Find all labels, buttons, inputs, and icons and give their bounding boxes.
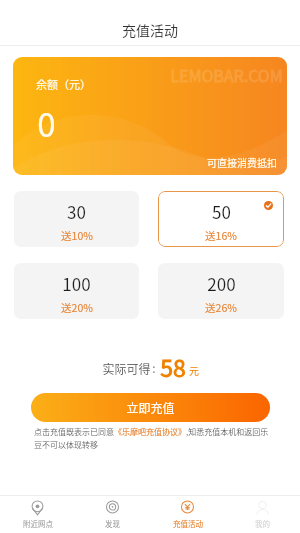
staticText: 100	[62, 271, 91, 296]
staticText: 实际可得	[102, 360, 151, 377]
staticText: 送26%	[205, 300, 237, 315]
staticText: 送10%	[61, 228, 93, 243]
staticText: 50	[212, 199, 231, 224]
button[interactable]: 30	[14, 191, 139, 247]
other: 附近网点	[30, 500, 45, 515]
button[interactable]: 我的	[225, 496, 300, 533]
button[interactable]: 附近网点	[0, 496, 75, 533]
button[interactable]: 发现	[75, 496, 150, 533]
staticText: 余额（元）	[36, 76, 91, 92]
staticText: 附近网点	[23, 518, 53, 529]
button[interactable]: 立即充值	[31, 393, 270, 422]
staticText: 30	[67, 199, 86, 224]
other: 充值活动	[180, 500, 195, 515]
staticText: 立即充值	[126, 399, 175, 416]
button[interactable]: 100	[14, 263, 139, 319]
staticText: 送16%	[205, 228, 237, 243]
staticText: :	[152, 359, 156, 376]
staticText: 可直接消费抵扣	[207, 155, 277, 169]
staticText: LEMOBAR.COM	[170, 63, 283, 86]
button[interactable]: 200	[158, 263, 284, 319]
button[interactable]: 余额（元）	[13, 57, 287, 175]
staticText: 送20%	[61, 300, 93, 315]
staticText: 点击充值既表示已同意《乐摩吧充值协议》,知悉充值本机和返回乐 豆不可以体现转移	[34, 426, 269, 450]
other: 我的	[255, 500, 270, 515]
staticText: 元	[189, 363, 199, 377]
staticText: 58	[160, 350, 186, 383]
staticText: 发现	[105, 518, 120, 529]
other: Selected	[264, 201, 273, 210]
staticText: 0	[37, 99, 56, 147]
staticText: 200	[207, 271, 236, 296]
staticText: 我的	[255, 518, 270, 529]
staticText: 充值活动	[173, 518, 203, 529]
button[interactable]: 充值活动	[150, 496, 225, 533]
other: 发现	[105, 500, 120, 515]
button[interactable]: 50	[158, 191, 284, 247]
staticText: 充值活动	[122, 20, 178, 40]
